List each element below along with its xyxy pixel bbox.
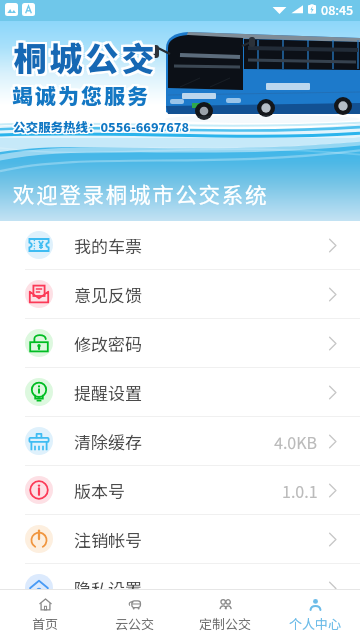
staticText: 个人中心 <box>289 614 342 633</box>
staticText: 隐私设置 <box>74 576 142 601</box>
staticText: 桐城公交 <box>10 31 154 79</box>
staticText: 4.0KB <box>274 430 318 453</box>
staticText: 公交服务热线：0556-6697678 <box>14 117 191 135</box>
staticText: 桐城公交 <box>14 35 158 83</box>
staticText: 竭诚为您服务 <box>10 78 148 108</box>
staticText: 桐城公交 <box>12 33 156 81</box>
button[interactable]: 修改密码 <box>0 319 360 368</box>
staticText: 公交服务热线：0556-6697678 <box>13 116 190 134</box>
staticText: 桐城公交 <box>10 33 154 81</box>
staticText: 08:45 <box>321 0 354 18</box>
button[interactable]: 隐私设置 <box>0 564 360 613</box>
staticText: 竭诚为您服务 <box>12 80 150 110</box>
button[interactable]: 提醒设置 <box>0 368 360 417</box>
button[interactable]: 首页 <box>0 597 90 633</box>
staticText: 清除缓存 <box>74 429 142 454</box>
staticText: 欢迎登录桐城市公交系统 <box>13 178 269 209</box>
staticText: 修改密码 <box>74 331 142 356</box>
staticText: 1.0.1 <box>282 479 318 502</box>
staticText: 首页 <box>32 614 59 633</box>
staticText: 意见反馈 <box>74 282 142 307</box>
staticText: 我的车票 <box>74 233 142 258</box>
staticText: 竭诚为您服务 <box>12 78 150 108</box>
staticText: 竭诚为您服务 <box>14 82 152 112</box>
button[interactable]: 云公交 <box>90 597 180 633</box>
button[interactable]: 注销帐号 <box>0 515 360 564</box>
staticText: 公交服务热线：0556-6697678 <box>12 118 189 136</box>
staticText: 竭诚为您服务 <box>14 80 152 110</box>
button[interactable]: 个人中心 <box>270 597 360 633</box>
staticText: 公交服务热线：0556-6697678 <box>12 116 189 134</box>
staticText: 桐城公交 <box>14 31 158 79</box>
staticText: 桐城公交 <box>12 35 156 83</box>
button[interactable]: 意见反馈 <box>0 270 360 319</box>
staticText: 提醒设置 <box>74 380 142 405</box>
staticText: 桐城公交 <box>10 35 154 83</box>
staticText: 云公交 <box>115 614 155 633</box>
staticText: 竭诚为您服务 <box>12 82 150 112</box>
staticText: 竭诚为您服务 <box>10 80 148 110</box>
staticText: 定制公交 <box>199 614 252 633</box>
staticText: 桐城公交 <box>12 31 156 79</box>
staticText: 注销帐号 <box>74 527 142 552</box>
button[interactable]: 版本号 <box>0 466 360 515</box>
staticText: 公交服务热线：0556-6697678 <box>12 117 189 135</box>
staticText: 竭诚为您服务 <box>14 78 152 108</box>
staticText: 公交服务热线：0556-6697678 <box>13 117 190 135</box>
button[interactable]: 定制公交 <box>180 597 270 633</box>
staticText: 竭诚为您服务 <box>10 82 148 112</box>
staticText: 桐城公交 <box>14 33 158 81</box>
staticText: 公交服务热线：0556-6697678 <box>14 118 191 136</box>
button[interactable]: 清除缓存 <box>0 417 360 466</box>
staticText: 公交服务热线：0556-6697678 <box>13 118 190 136</box>
button[interactable]: 我的车票 <box>0 221 360 270</box>
staticText: 公交服务热线：0556-6697678 <box>14 116 191 134</box>
staticText: 版本号 <box>74 478 125 503</box>
